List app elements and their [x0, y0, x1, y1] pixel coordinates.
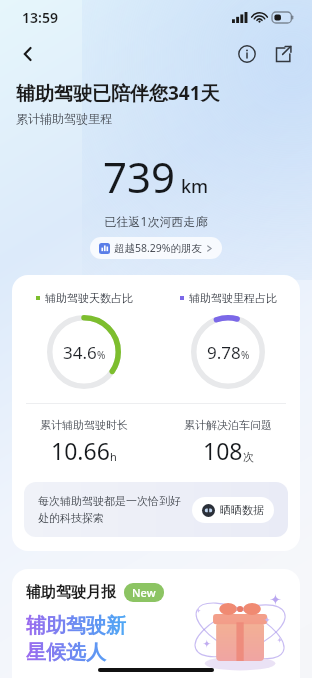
staticText: 10.66	[51, 435, 110, 466]
staticText: 辅助驾驶天数占比	[45, 291, 133, 305]
staticText: 累计辅助驾驶里程	[16, 111, 112, 126]
staticText: %	[97, 348, 106, 362]
staticText: 辅助驾驶已陪伴您341天	[16, 80, 220, 106]
button[interactable]: 辅助驾驶月报	[12, 569, 300, 678]
staticText: 已往返1次河西走廊	[0, 213, 312, 229]
staticText: 辅助驾驶里程占比	[189, 291, 277, 305]
staticText: km	[181, 174, 209, 199]
staticText: h	[110, 449, 117, 464]
staticText: 108	[203, 435, 243, 466]
staticText: 34.6	[63, 341, 97, 364]
staticText: 累计辅助驾驶时长	[40, 418, 128, 432]
staticText: 辅助驾驶新 星候选人	[26, 613, 126, 665]
staticText: 晒晒数据	[220, 503, 264, 517]
staticText: 辅助驾驶月报	[26, 583, 116, 602]
button[interactable]: Info	[230, 37, 264, 71]
button[interactable]: Share	[266, 37, 300, 71]
staticText: 13:59	[22, 8, 58, 27]
staticText: 9.78	[207, 341, 241, 364]
button[interactable]: 超越58.29%的朋友	[90, 237, 222, 259]
staticText: 739	[103, 148, 176, 205]
button[interactable]: Back	[10, 36, 46, 72]
staticText: 累计解决泊车问题	[184, 418, 272, 432]
staticText: 超越58.29%的朋友	[114, 241, 203, 255]
staticText: 每次辅助驾驶都是一次恰到好 处的科技探索	[38, 494, 184, 525]
staticText: New	[132, 585, 156, 600]
staticText: %	[241, 348, 250, 362]
button[interactable]: 晒晒数据	[192, 497, 274, 523]
staticText: 次	[243, 450, 254, 464]
